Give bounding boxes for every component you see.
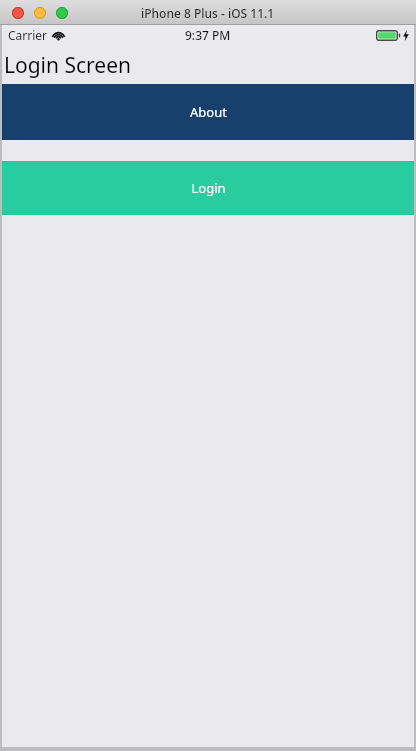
button[interactable]: About	[2, 84, 414, 140]
staticText: Login Screen	[4, 51, 132, 80]
button[interactable]: Close window	[12, 7, 24, 19]
staticText: Login	[191, 179, 226, 197]
staticText: Carrier	[8, 27, 48, 43]
button[interactable]: Minimize window	[34, 7, 46, 19]
button[interactable]: Login	[2, 161, 414, 215]
staticText: 9:37 PM	[185, 27, 231, 43]
staticText: iPhone 8 Plus - iOS 11.1	[141, 5, 275, 21]
button[interactable]: Zoom window	[56, 7, 68, 19]
staticText: About	[190, 103, 227, 121]
